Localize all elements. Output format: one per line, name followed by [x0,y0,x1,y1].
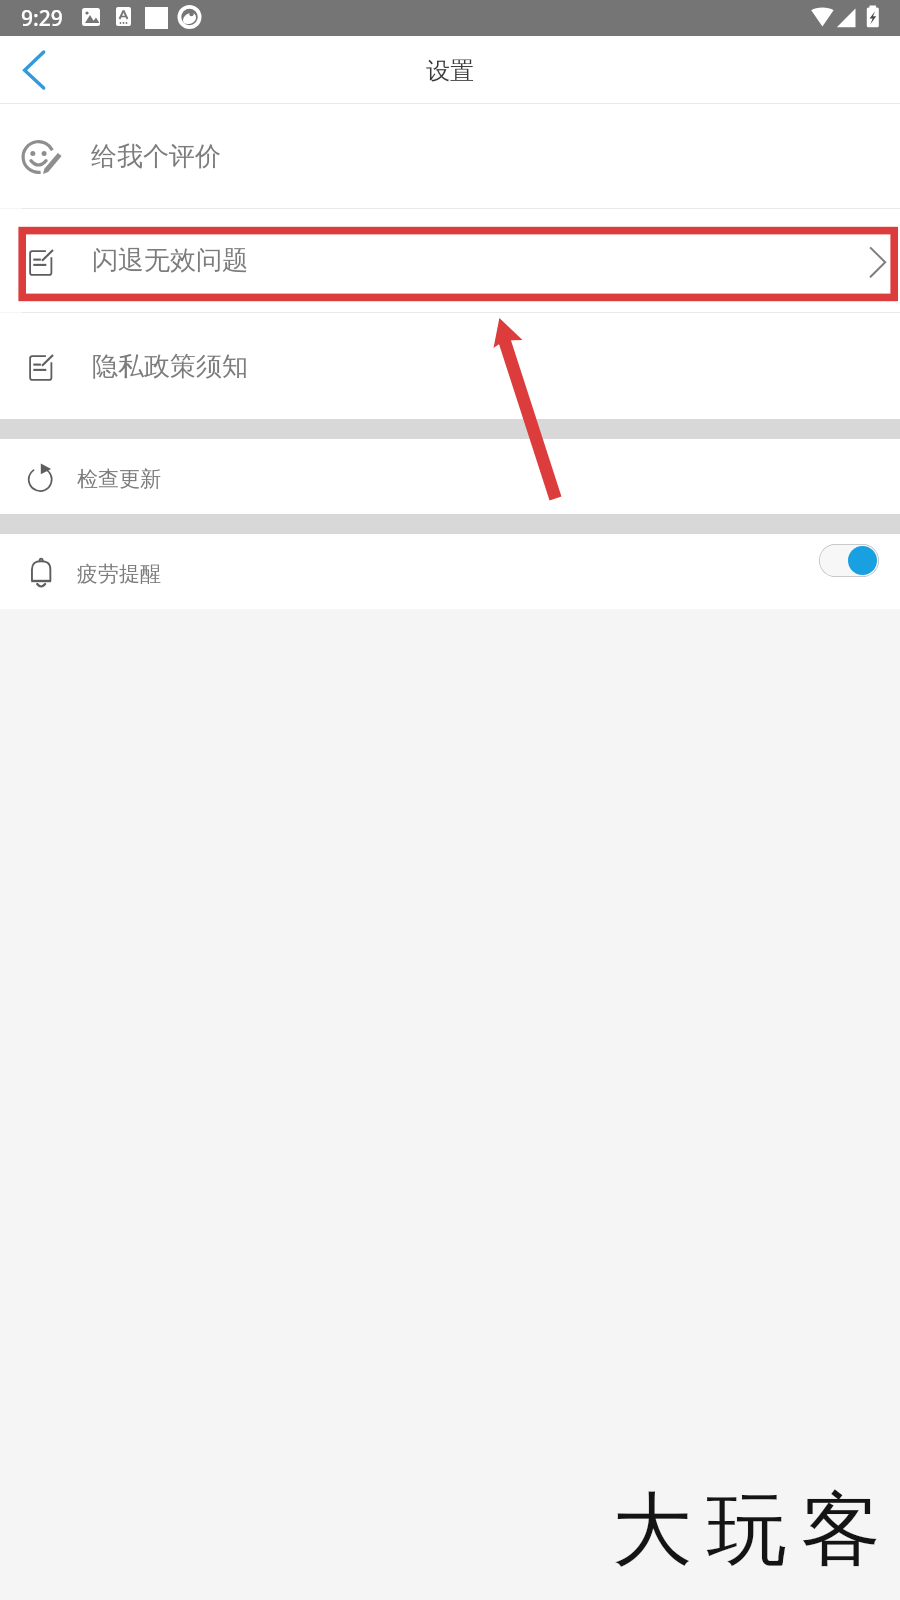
button[interactable]: 给我个评价 [0,104,900,208]
staticText: 检查更新 [77,466,161,492]
staticText: 隐私政策须知 [92,350,248,383]
button[interactable]: 隐私政策须知 [0,313,900,419]
button[interactable]: 疲劳提醒 [0,534,900,609]
staticText: 9:29 [21,4,63,33]
staticText: 设置 [426,56,474,86]
staticText: 大玩客 [612,1480,896,1581]
button[interactable]: 检查更新 [0,439,900,514]
button[interactable]: 闪退无效问题 [0,209,900,312]
button[interactable]: Fatigue reminder toggle [819,544,879,577]
button[interactable]: Back [0,36,68,104]
button[interactable]: Open [847,241,887,281]
staticText: 闪退无效问题 [92,244,248,277]
staticText: 疲劳提醒 [77,561,161,587]
staticText: 给我个评价 [91,140,221,173]
